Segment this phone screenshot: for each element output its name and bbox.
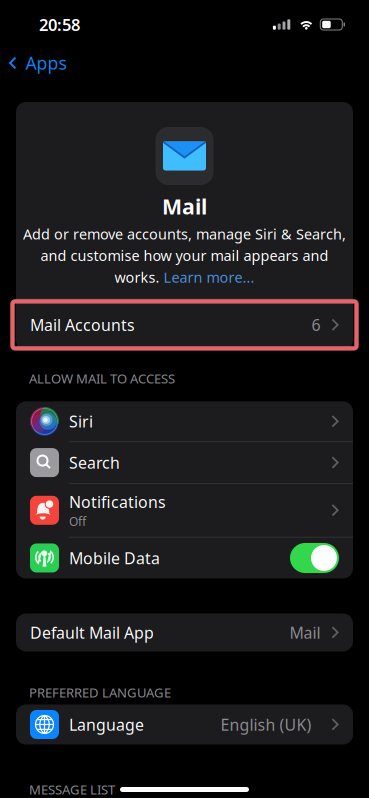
button[interactable]: Mail Accounts (16, 299, 353, 350)
staticText: PREFERRED LANGUAGE (29, 684, 171, 701)
staticText: Mail (289, 622, 320, 643)
staticText: Learn more... (163, 268, 254, 287)
button[interactable]: Learn more... (163, 268, 254, 287)
staticText: Default Mail App (30, 622, 154, 643)
staticText: Add or remove accounts, manage Siri & Se… (23, 224, 346, 243)
staticText: MESSAGE LIST (29, 781, 115, 798)
staticText: Apps (25, 51, 66, 75)
staticText: English (UK) (220, 714, 311, 735)
button[interactable]: Default Mail App (0, 613, 369, 651)
staticText: 6 (311, 314, 320, 335)
button[interactable]: Mobile Data (290, 543, 339, 573)
staticText: Mail (162, 192, 207, 220)
staticText: Siri (69, 411, 93, 432)
staticText: Mail Accounts (30, 314, 135, 335)
staticText: ALLOW MAIL TO ACCESS (29, 370, 175, 387)
staticText: works. (114, 268, 163, 287)
button[interactable]: Notifications (16, 484, 353, 537)
staticText: Off (69, 513, 86, 529)
staticText: Language (69, 714, 144, 735)
staticText: Mobile Data (69, 547, 160, 569)
staticText: and customise how your mail appears and (40, 246, 328, 265)
staticText: Search (69, 452, 120, 473)
button[interactable]: Language (0, 704, 369, 744)
button[interactable]: Search (16, 442, 353, 483)
button[interactable]: Siri (16, 401, 353, 441)
staticText: Notifications (69, 491, 166, 512)
staticText: 20:58 (39, 13, 80, 35)
button[interactable]: Apps (0, 45, 80, 81)
